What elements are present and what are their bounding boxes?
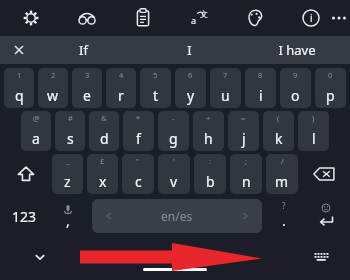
staticText: n <box>242 172 251 191</box>
button[interactable]: , <box>46 196 90 236</box>
button[interactable]: ' <box>158 154 190 194</box>
button[interactable]: 0 <box>315 68 346 108</box>
staticText: j <box>242 129 246 148</box>
button[interactable]: ; <box>230 154 262 194</box>
staticText: I <box>187 41 192 59</box>
staticText: # <box>68 113 73 123</box>
button[interactable]: " <box>122 154 154 194</box>
button[interactable]: 9 <box>280 68 311 108</box>
staticText: i <box>259 86 263 105</box>
button[interactable]: 7 <box>210 68 241 108</box>
button[interactable]: + <box>193 111 224 151</box>
button[interactable]: Clipboard <box>126 1 160 35</box>
button[interactable]: Settings <box>14 1 48 35</box>
staticText: l <box>312 129 316 148</box>
button[interactable]: Translate <box>182 1 216 35</box>
staticText: ) <box>312 113 315 123</box>
staticText: 5 <box>153 70 158 80</box>
button[interactable]: Info <box>294 1 328 35</box>
button[interactable]: 123 <box>2 196 46 236</box>
button[interactable]: Themes <box>238 1 272 35</box>
staticText: . <box>282 211 286 230</box>
staticText: , <box>66 211 70 230</box>
button[interactable]: * <box>123 111 154 151</box>
staticText: If <box>79 41 88 59</box>
button[interactable]: More options <box>328 1 350 35</box>
button[interactable]: ? <box>264 196 304 236</box>
staticText: p <box>326 86 335 105</box>
button[interactable]: @ <box>21 111 51 151</box>
staticText: - <box>172 113 175 123</box>
staticText: c <box>135 172 142 191</box>
staticText: q <box>15 86 24 105</box>
staticText: h <box>204 129 213 148</box>
button[interactable]: Close suggestions <box>6 37 32 63</box>
staticText: = <box>241 113 246 123</box>
button[interactable]: : <box>194 154 226 194</box>
staticText: e <box>83 86 91 105</box>
staticText: s <box>67 129 74 148</box>
button[interactable]: & <box>89 111 119 151</box>
staticText: 7 <box>223 70 228 80</box>
button[interactable]: Enter <box>304 196 348 236</box>
staticText: / <box>281 156 284 166</box>
staticText: I have <box>278 41 316 59</box>
button[interactable]: # <box>55 111 85 151</box>
button[interactable]: Backspace <box>300 154 348 194</box>
staticText: m <box>275 172 289 191</box>
staticText: 9 <box>293 70 298 80</box>
button[interactable]: Hide keyboard <box>26 243 54 271</box>
staticText: £ <box>100 156 105 166</box>
button[interactable]: 8 <box>245 68 276 108</box>
button[interactable]: Switch keyboard <box>308 243 336 271</box>
button[interactable]: Shift <box>2 154 50 194</box>
button[interactable]: 2 <box>38 68 68 108</box>
button[interactable]: 4 <box>106 68 136 108</box>
staticText: 0 <box>328 70 333 80</box>
button[interactable]: I have <box>243 36 350 64</box>
button[interactable]: ( <box>263 111 294 151</box>
button[interactable]: = <box>228 111 259 151</box>
button[interactable]: 3 <box>72 68 102 108</box>
staticText: t <box>153 86 159 105</box>
button[interactable]: 5 <box>140 68 171 108</box>
staticText: 2 <box>51 70 56 80</box>
staticText: 文 <box>200 9 208 19</box>
button[interactable]: ) <box>298 111 329 151</box>
staticText: _ <box>66 156 70 166</box>
staticText: & <box>101 113 107 123</box>
staticText: d <box>100 129 109 148</box>
staticText: k <box>275 129 283 148</box>
button[interactable]: en/es <box>92 199 262 233</box>
staticText: ' <box>173 156 175 166</box>
staticText: 6 <box>188 70 193 80</box>
staticText: 4 <box>119 70 124 80</box>
staticText: x <box>99 172 107 191</box>
staticText: i <box>310 11 313 25</box>
staticText: y <box>187 86 195 105</box>
staticText: u <box>221 86 230 105</box>
staticText: ? <box>282 200 286 211</box>
staticText: f <box>136 129 141 148</box>
button[interactable]: I <box>136 36 243 64</box>
staticText: ( <box>277 113 280 123</box>
button[interactable]: / <box>266 154 298 194</box>
button[interactable]: 6 <box>175 68 206 108</box>
staticText: b <box>206 172 215 191</box>
staticText: : <box>209 156 212 166</box>
staticText: 123 <box>12 207 37 226</box>
staticText: v <box>170 172 178 191</box>
staticText: " <box>136 156 140 166</box>
staticText: * <box>136 113 141 123</box>
button[interactable]: - <box>158 111 189 151</box>
button[interactable]: 1 <box>4 68 34 108</box>
button[interactable]: Incognito mode <box>70 1 104 35</box>
button[interactable]: £ <box>87 154 118 194</box>
button[interactable]: If <box>30 36 136 64</box>
button[interactable]: _ <box>52 154 83 194</box>
staticText: 3 <box>85 70 90 80</box>
staticText: g <box>169 129 178 148</box>
staticText: z <box>64 172 71 191</box>
staticText: a <box>32 129 40 148</box>
staticText: a <box>191 14 197 26</box>
